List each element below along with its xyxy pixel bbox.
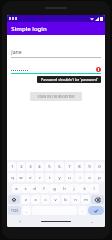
button[interactable]: [32, 217, 80, 225]
staticText: q: [11, 175, 14, 181]
staticText: s: [24, 186, 27, 192]
staticText: f: [43, 186, 45, 192]
button[interactable]: t: [45, 173, 54, 182]
staticText: k: [83, 186, 86, 192]
button[interactable]: Shift: [8, 195, 20, 204]
staticText: 9: [88, 164, 91, 170]
staticText: 0: [98, 164, 101, 170]
staticText: n: [74, 197, 77, 203]
button[interactable]: w: [17, 173, 25, 182]
button[interactable]: z: [21, 195, 30, 204]
staticText: i: [79, 175, 81, 181]
button[interactable]: Error: [11, 64, 101, 74]
button[interactable]: h: [59, 184, 69, 193]
button[interactable]: 9: [85, 162, 94, 171]
button[interactable]: k: [79, 184, 89, 193]
staticText: Simple login: [11, 25, 47, 33]
staticText: SIGN IN OR REGISTER: [37, 94, 75, 99]
staticText: Jane: [11, 48, 22, 55]
staticText: m: [84, 197, 88, 203]
staticText: ⌄: [90, 219, 94, 224]
staticText: v: [54, 197, 57, 203]
staticText: .: [82, 208, 83, 213]
button[interactable]: Enter: [88, 206, 104, 215]
button[interactable]: b: [61, 195, 70, 204]
button[interactable]: 6: [55, 162, 64, 171]
staticText: 8: [78, 164, 81, 170]
button[interactable]: 1: [8, 162, 16, 171]
staticText: e: [29, 175, 32, 181]
staticText: ?123: [11, 209, 18, 213]
staticText: ‹: [19, 218, 21, 225]
button[interactable]: Back: [8, 217, 32, 225]
button[interactable]: Jane: [11, 48, 101, 58]
button[interactable]: v: [51, 195, 60, 204]
button[interactable]: g: [49, 184, 59, 193]
staticText: y: [58, 175, 61, 181]
button[interactable]: m: [81, 195, 90, 204]
button[interactable]: u: [65, 173, 74, 182]
button[interactable]: SIGN IN OR REGISTER: [30, 92, 82, 101]
button[interactable]: y: [55, 173, 64, 182]
button[interactable]: e: [26, 173, 34, 182]
button[interactable]: 4: [35, 162, 44, 171]
staticText: w: [19, 175, 23, 181]
other: Error: [96, 67, 101, 72]
staticText: l: [93, 186, 95, 192]
staticText: ,: [26, 208, 27, 213]
staticText: r: [39, 175, 41, 181]
button[interactable]: ?123: [8, 206, 21, 215]
staticText: o: [88, 175, 91, 181]
button[interactable]: Comma: [22, 206, 31, 215]
button[interactable]: d: [30, 184, 39, 193]
button[interactable]: 7: [65, 162, 74, 171]
button[interactable]: f: [39, 184, 49, 193]
staticText: t: [49, 175, 51, 181]
staticText: j: [73, 186, 75, 192]
staticText: 1: [11, 164, 14, 170]
button[interactable]: Backspace: [91, 195, 104, 204]
staticText: b: [64, 197, 67, 203]
staticText: u: [68, 175, 71, 181]
button[interactable]: a: [12, 184, 21, 193]
staticText: 7: [68, 164, 71, 170]
button[interactable]: Period: [78, 206, 87, 215]
staticText: d: [33, 186, 36, 192]
button[interactable]: p: [95, 173, 104, 182]
button[interactable]: c: [41, 195, 50, 204]
staticText: 5: [48, 164, 51, 170]
staticText: g: [53, 186, 56, 192]
button[interactable]: j: [69, 184, 79, 193]
button[interactable]: 3: [26, 162, 34, 171]
staticText: z: [25, 197, 27, 203]
button[interactable]: o: [85, 173, 94, 182]
button[interactable]: Simple login: [7, 22, 105, 35]
staticText: 6: [58, 164, 61, 170]
button[interactable]: r: [35, 173, 44, 182]
button[interactable]: 2: [17, 162, 25, 171]
button[interactable]: 8: [75, 162, 84, 171]
button[interactable]: n: [71, 195, 80, 204]
staticText: c: [44, 197, 47, 203]
staticText: a: [15, 186, 18, 192]
staticText: h: [63, 186, 66, 192]
staticText: p: [98, 175, 101, 181]
button[interactable]: s: [21, 184, 30, 193]
button[interactable]: i: [75, 173, 84, 182]
button[interactable]: l: [89, 184, 99, 193]
button[interactable]: 0: [95, 162, 104, 171]
button[interactable]: x: [31, 195, 40, 204]
staticText: 3: [29, 164, 32, 170]
staticText: Password shouldn't be 'password': [41, 77, 98, 82]
button[interactable]: 5: [45, 162, 54, 171]
button[interactable]: Hide keyboard: [80, 217, 104, 225]
staticText: x: [34, 197, 37, 203]
staticText: 2: [20, 164, 23, 170]
button[interactable]: q: [8, 173, 16, 182]
staticText: 4: [38, 164, 41, 170]
